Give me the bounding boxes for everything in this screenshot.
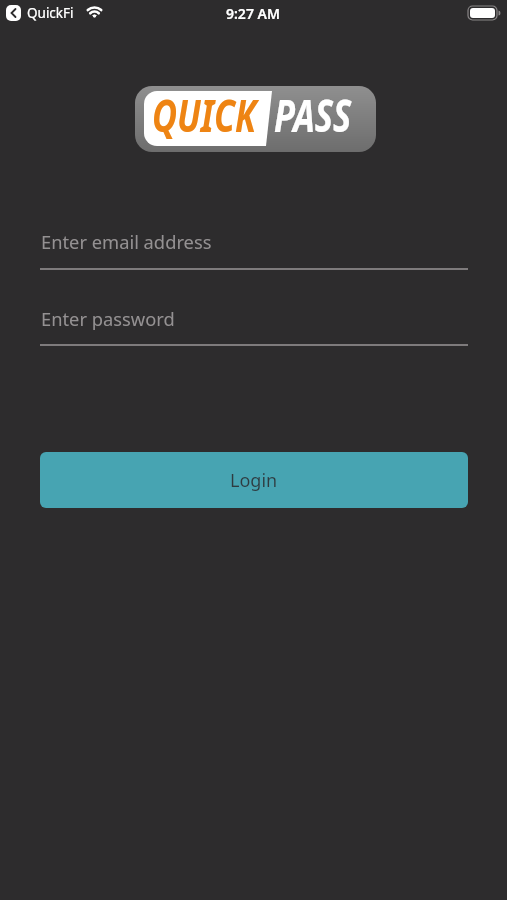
staticText: QuickFi	[27, 4, 74, 22]
staticText: Login	[230, 468, 278, 493]
staticText: Enter password	[41, 306, 175, 331]
staticText: 9:27 AM	[226, 4, 280, 23]
button[interactable]: Enter email address	[40, 224, 468, 270]
staticText: QUICK	[152, 85, 256, 145]
staticText: Enter email address	[41, 229, 212, 254]
staticText: PASS	[274, 85, 351, 145]
button[interactable]	[6, 5, 21, 21]
button[interactable]: Enter password	[40, 301, 468, 347]
button[interactable]: Login	[40, 452, 468, 508]
